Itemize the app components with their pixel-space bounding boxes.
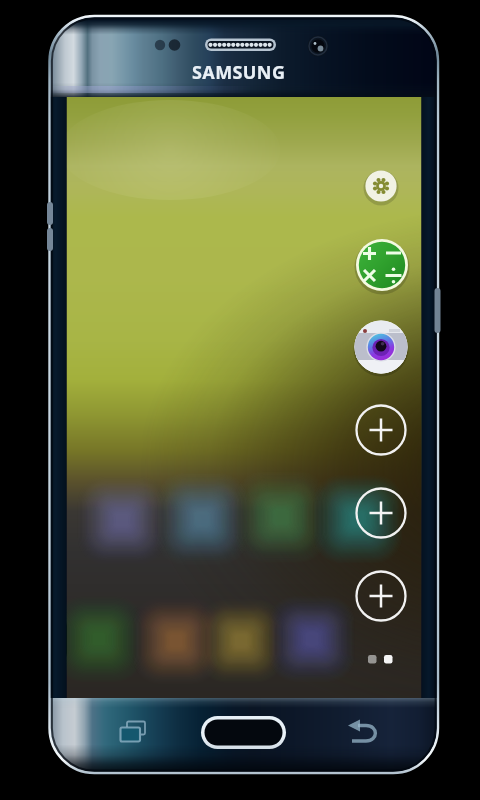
button[interactable]: Settings bbox=[364, 169, 398, 203]
button[interactable]: Calculator bbox=[355, 238, 409, 292]
button[interactable]: Add shortcut bbox=[355, 570, 407, 622]
button[interactable]: Camera bbox=[354, 320, 408, 374]
button[interactable]: Add shortcut bbox=[355, 487, 407, 539]
button[interactable]: Add shortcut bbox=[355, 404, 407, 456]
staticText: SAMSUNG bbox=[192, 60, 286, 85]
